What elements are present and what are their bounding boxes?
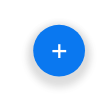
button[interactable]: Add (32, 24, 86, 78)
